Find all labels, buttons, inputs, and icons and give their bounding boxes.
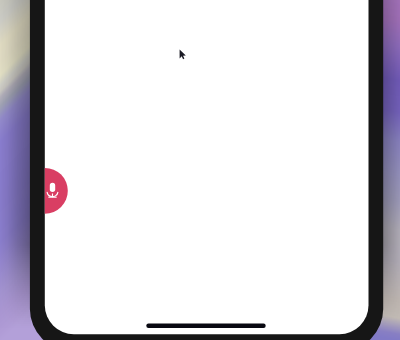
button[interactable]: Voice search <box>22 167 68 213</box>
